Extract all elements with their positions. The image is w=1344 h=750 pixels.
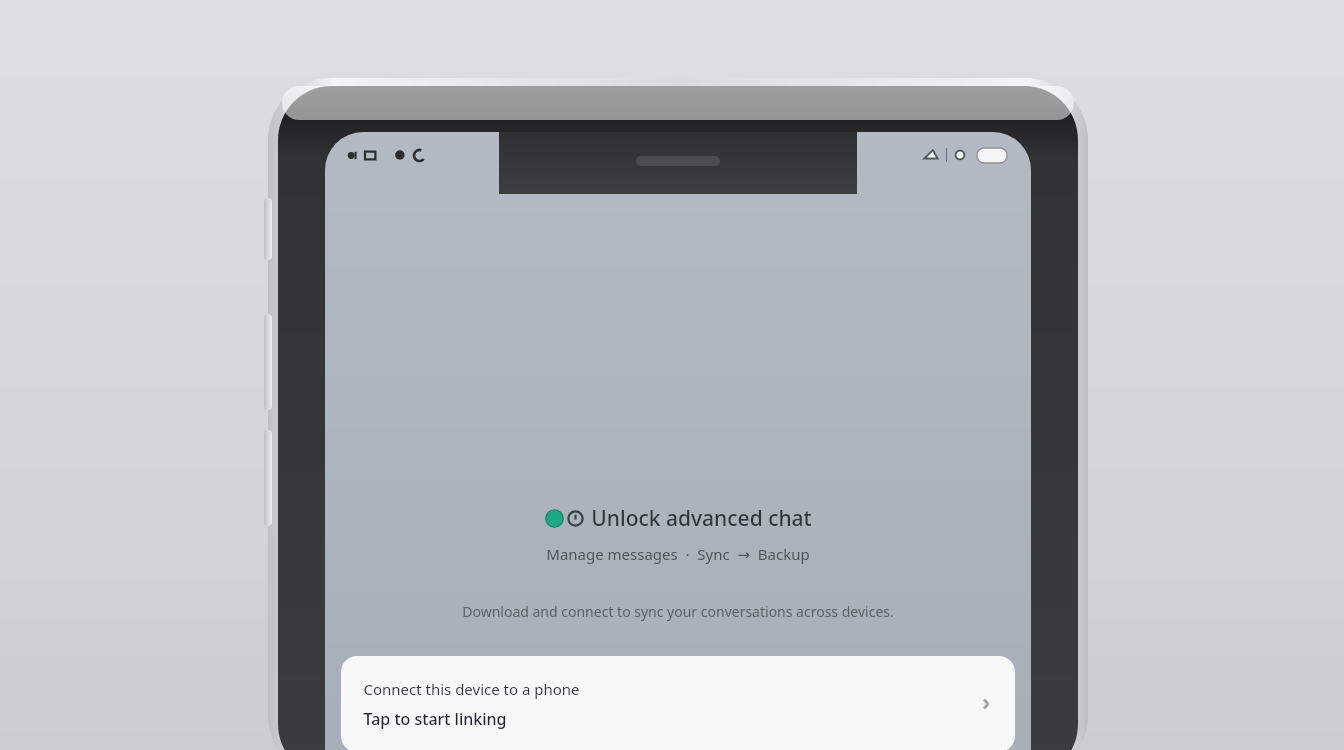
staticText: Unlock advanced chat [591,504,812,533]
staticText: Manage messages · Sync → Backup [546,544,810,564]
staticText: Download and connect to sync your conver… [351,602,1005,621]
button[interactable]: Connect this device to a phone [341,656,1015,750]
staticText: Tap to start linking [363,708,507,730]
staticText: Connect this device to a phone [363,679,580,699]
other: Open [979,697,993,711]
